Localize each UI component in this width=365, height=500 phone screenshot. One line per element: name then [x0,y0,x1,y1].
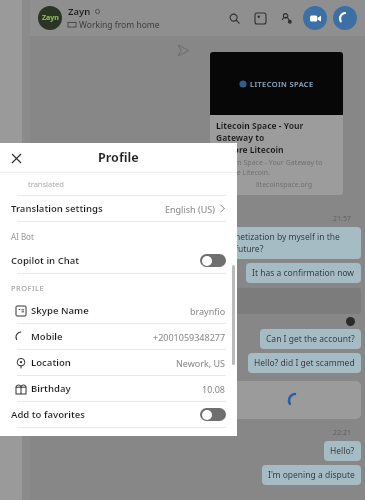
staticText: Add to favorites [11,408,85,421]
button[interactable]: Search [225,9,243,27]
staticText: Litecoin Space - Your Gateway to Explore… [216,120,337,156]
staticText: English (US) [165,203,215,215]
staticText: Litecoin Space - Your Gateway to Explore… [216,158,337,178]
button[interactable]: Translation settings [11,196,226,221]
staticText: Can I get the account? [266,333,355,345]
button[interactable]: Video call [303,6,327,30]
staticText: Location [31,356,71,369]
staticText: +2001059348277 [153,331,226,343]
staticText: 21:57 [333,214,351,224]
staticText: netization by myself in the future? [235,231,355,255]
button[interactable]: Hello? [324,441,361,461]
button[interactable]: Location [11,350,226,375]
button[interactable]: Gallery [251,9,269,27]
staticText: Zayn [42,13,59,23]
button[interactable]: Hello? did I get scammed [248,353,361,373]
staticText: Translation settings [11,202,103,215]
staticText: It has a confirmation now [252,267,355,279]
staticText: Zayn [68,5,91,18]
button[interactable]: Birthday [11,376,226,401]
staticText: Skype Name [31,304,89,317]
button[interactable]: Audio call [333,6,357,30]
staticText: Birthday [31,382,71,395]
button[interactable]: Profile photo [38,6,62,30]
button[interactable]: Skype Name [11,298,226,323]
button[interactable]: Add people [277,9,295,27]
staticText: AI Bot [11,231,34,242]
staticText: translated [28,179,64,189]
button[interactable]: Mobile [11,324,226,349]
staticText: braynfio [190,305,226,317]
staticText: Copilot in Chat [11,254,80,267]
button[interactable]: Can I get the account? [260,329,361,349]
button[interactable]: Close [5,147,27,169]
button[interactable]: LITECOIN SPACE [210,52,343,195]
staticText: Mobile [31,330,63,343]
staticText: Working from home [79,19,160,31]
staticText: 10.08 [202,383,226,395]
staticText: Nework, US [176,357,226,369]
staticText: I'm opening a dispute [268,469,355,481]
button[interactable]: Copilot in Chat [11,248,226,273]
staticText: Profile [98,149,139,166]
button[interactable]: netization by myself in the future? [229,227,361,259]
button[interactable]: Call [229,381,361,419]
staticText: 22:21 [333,428,351,438]
staticText: litecoinspace.org [256,180,312,190]
button[interactable]: It has a confirmation now [246,263,361,283]
staticText: Hello? [330,445,355,457]
button[interactable]: Add to favorites [11,402,226,427]
staticText: Hello? did I get scammed [254,357,355,369]
staticText: LITECOIN SPACE [250,79,314,89]
staticText: PROFILE [11,283,45,293]
button[interactable]: I'm opening a dispute [262,465,361,485]
